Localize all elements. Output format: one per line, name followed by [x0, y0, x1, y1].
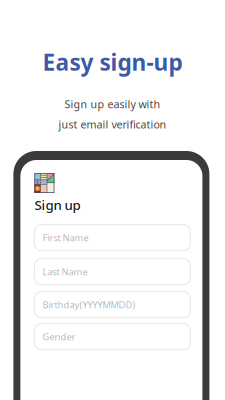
- staticText: just email verification: [58, 117, 166, 131]
- button[interactable]: Birthday(YYYYMMDD): [34, 292, 190, 318]
- staticText: Gender: [42, 330, 75, 343]
- button[interactable]: Gender: [34, 324, 190, 350]
- staticText: Sign up easily with: [64, 97, 160, 111]
- button[interactable]: First Name: [34, 225, 190, 251]
- staticText: Birthday(YYYYMMDD): [42, 298, 135, 311]
- staticText: First Name: [42, 231, 88, 244]
- staticText: Easy sign-up: [42, 47, 182, 77]
- staticText: Last Name: [42, 265, 87, 278]
- button[interactable]: Last Name: [34, 259, 190, 285]
- staticText: Sign up: [34, 196, 80, 214]
